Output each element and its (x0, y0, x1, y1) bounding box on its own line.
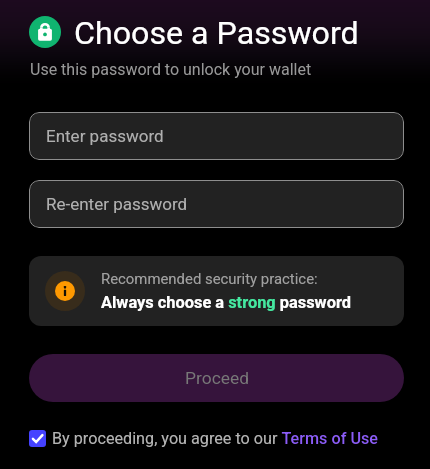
staticText: By proceeding, you agree to our Terms of… (52, 429, 378, 448)
button[interactable]: Enter password (29, 112, 404, 160)
button[interactable]: Re-enter password (29, 180, 404, 228)
staticText: Recommended security practice: (101, 270, 318, 287)
staticText: Use this password to unlock your wallet (30, 60, 312, 79)
staticText: Choose a Password (74, 14, 359, 52)
staticText: Proceed (185, 368, 249, 388)
button[interactable]: Proceed (29, 354, 404, 402)
staticText: Always choose a strong password (101, 293, 351, 312)
button[interactable]: Recommended security practice: (29, 256, 404, 326)
staticText: Re-enter password (46, 194, 188, 214)
staticText: Enter password (46, 126, 164, 146)
button[interactable]: Accept terms checkbox (29, 430, 46, 447)
